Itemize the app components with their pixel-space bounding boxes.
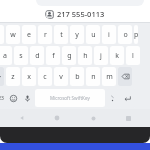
button[interactable]: j xyxy=(94,46,108,65)
button[interactable]: Back xyxy=(9,109,35,127)
button[interactable]: m xyxy=(102,67,116,86)
button[interactable]: y xyxy=(70,25,84,44)
button[interactable]: e xyxy=(22,25,36,44)
staticText: s xyxy=(19,51,23,61)
button[interactable]: w xyxy=(6,25,20,44)
button[interactable]: Home xyxy=(44,109,70,127)
staticText: z xyxy=(11,72,15,82)
button[interactable]: g xyxy=(62,46,76,65)
button[interactable]: l xyxy=(126,46,140,65)
staticText: Microsoft SwiftKey xyxy=(50,95,90,101)
staticText: v xyxy=(59,72,63,82)
staticText: l xyxy=(132,51,134,61)
staticText: ?123 xyxy=(0,95,4,102)
staticText: b xyxy=(75,72,80,82)
button[interactable]: p xyxy=(134,25,138,44)
staticText: d xyxy=(35,51,40,61)
staticText: f xyxy=(52,51,55,61)
button[interactable]: u xyxy=(86,25,100,44)
staticText: a xyxy=(3,51,7,61)
staticText: n xyxy=(91,72,96,82)
staticText: k xyxy=(115,51,119,61)
button[interactable]: i xyxy=(102,25,116,44)
button[interactable]: Emoji xyxy=(7,88,20,108)
staticText: y xyxy=(75,30,79,40)
staticText: m xyxy=(106,72,113,82)
button[interactable]: Period xyxy=(107,88,118,108)
staticText: t xyxy=(60,30,63,40)
button[interactable]: ?123 xyxy=(0,88,5,108)
button[interactable]: r xyxy=(38,25,52,44)
staticText: i xyxy=(108,30,110,40)
button[interactable]: b xyxy=(70,67,84,86)
button[interactable]: s xyxy=(14,46,28,65)
staticText: u xyxy=(91,30,96,40)
button[interactable]: 217 555-0113 xyxy=(45,9,105,19)
button[interactable]: d xyxy=(30,46,44,65)
button[interactable]: t xyxy=(54,25,68,44)
staticText: g xyxy=(67,51,72,61)
staticText: w xyxy=(10,30,16,40)
button[interactable]: o xyxy=(118,25,132,44)
button[interactable]: Enter xyxy=(120,88,135,108)
button[interactable]: Shift xyxy=(0,67,4,86)
button[interactable]: f xyxy=(46,46,60,65)
staticText: 217 555-0113 xyxy=(57,9,105,19)
button[interactable]: Assistant xyxy=(80,109,106,127)
staticText: x xyxy=(27,72,31,82)
staticText: j xyxy=(100,51,102,61)
button[interactable]: z xyxy=(6,67,20,86)
staticText: h xyxy=(83,51,88,61)
button[interactable]: a xyxy=(0,46,12,65)
staticText: o xyxy=(123,30,128,40)
button[interactable]: Voice input xyxy=(22,88,33,108)
button[interactable]: h xyxy=(78,46,92,65)
staticText: e xyxy=(27,30,31,40)
button[interactable]: v xyxy=(54,67,68,86)
staticText: c xyxy=(43,72,47,82)
staticText: p xyxy=(134,30,138,40)
button[interactable]: x xyxy=(22,67,36,86)
button[interactable]: c xyxy=(38,67,52,86)
button[interactable]: Microsoft SwiftKey xyxy=(35,89,105,107)
staticText: r xyxy=(44,30,47,40)
button[interactable]: Recent apps xyxy=(115,109,141,127)
button[interactable]: Backspace xyxy=(118,67,132,86)
button[interactable]: k xyxy=(110,46,124,65)
button[interactable]: n xyxy=(86,67,100,86)
